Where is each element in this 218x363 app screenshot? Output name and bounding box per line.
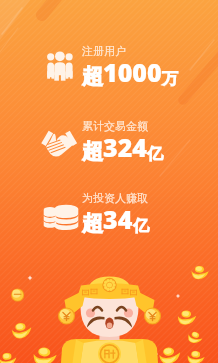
staticText: 累计交易金额 bbox=[82, 119, 148, 133]
button[interactable]: 累计交易金额 bbox=[38, 115, 188, 163]
staticText: 超 bbox=[82, 138, 103, 164]
staticText: 超 bbox=[82, 210, 103, 236]
button[interactable]: 注册用户 bbox=[38, 40, 188, 88]
staticText: 亿 bbox=[147, 144, 163, 164]
staticText: 万 bbox=[162, 69, 178, 89]
button[interactable]: 为投资人赚取 bbox=[38, 187, 188, 235]
staticText: 324 bbox=[103, 130, 147, 164]
staticText: 亿 bbox=[133, 216, 149, 236]
staticText: 超 bbox=[82, 63, 103, 89]
staticText: 为投资人赚取 bbox=[82, 191, 148, 205]
staticText: 1000 bbox=[103, 55, 162, 89]
staticText: 34 bbox=[103, 202, 133, 236]
staticText: 注册用户 bbox=[82, 44, 126, 58]
